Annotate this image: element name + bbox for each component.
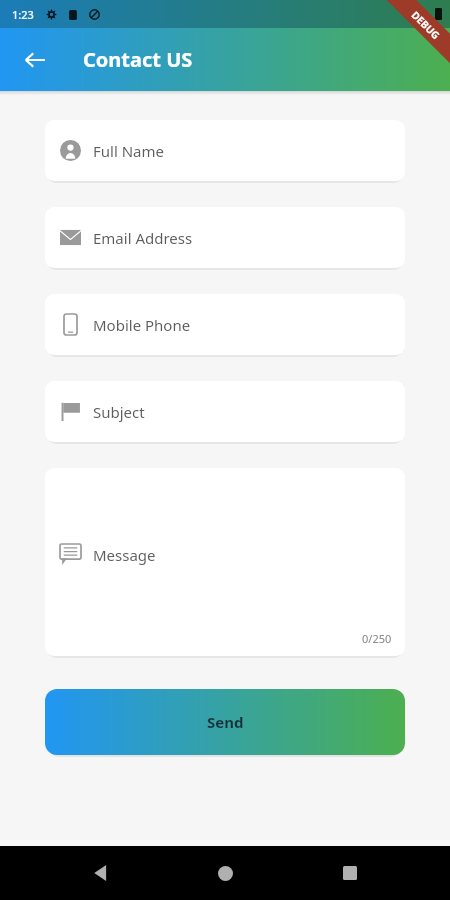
staticText: Email Address: [93, 228, 193, 248]
staticText: Contact US: [83, 46, 193, 73]
staticText: Send: [207, 712, 244, 732]
button[interactable]: Recent apps: [326, 849, 374, 897]
button[interactable]: Subject: [45, 381, 405, 442]
button[interactable]: Message: [45, 468, 405, 656]
button[interactable]: Send: [45, 689, 405, 755]
staticText: Message: [93, 545, 156, 565]
button[interactable]: Back: [77, 849, 125, 897]
button[interactable]: Full Name: [45, 120, 405, 181]
staticText: 1:23: [12, 7, 34, 22]
button[interactable]: Home: [201, 849, 249, 897]
staticText: 0/250: [362, 631, 392, 646]
button[interactable]: Email Address: [45, 207, 405, 268]
staticText: Subject: [93, 402, 145, 422]
staticText: Full Name: [93, 141, 164, 161]
button[interactable]: Back: [16, 41, 54, 79]
staticText: DEBUG: [409, 8, 443, 42]
button[interactable]: Mobile Phone: [45, 294, 405, 355]
staticText: Mobile Phone: [93, 315, 191, 335]
